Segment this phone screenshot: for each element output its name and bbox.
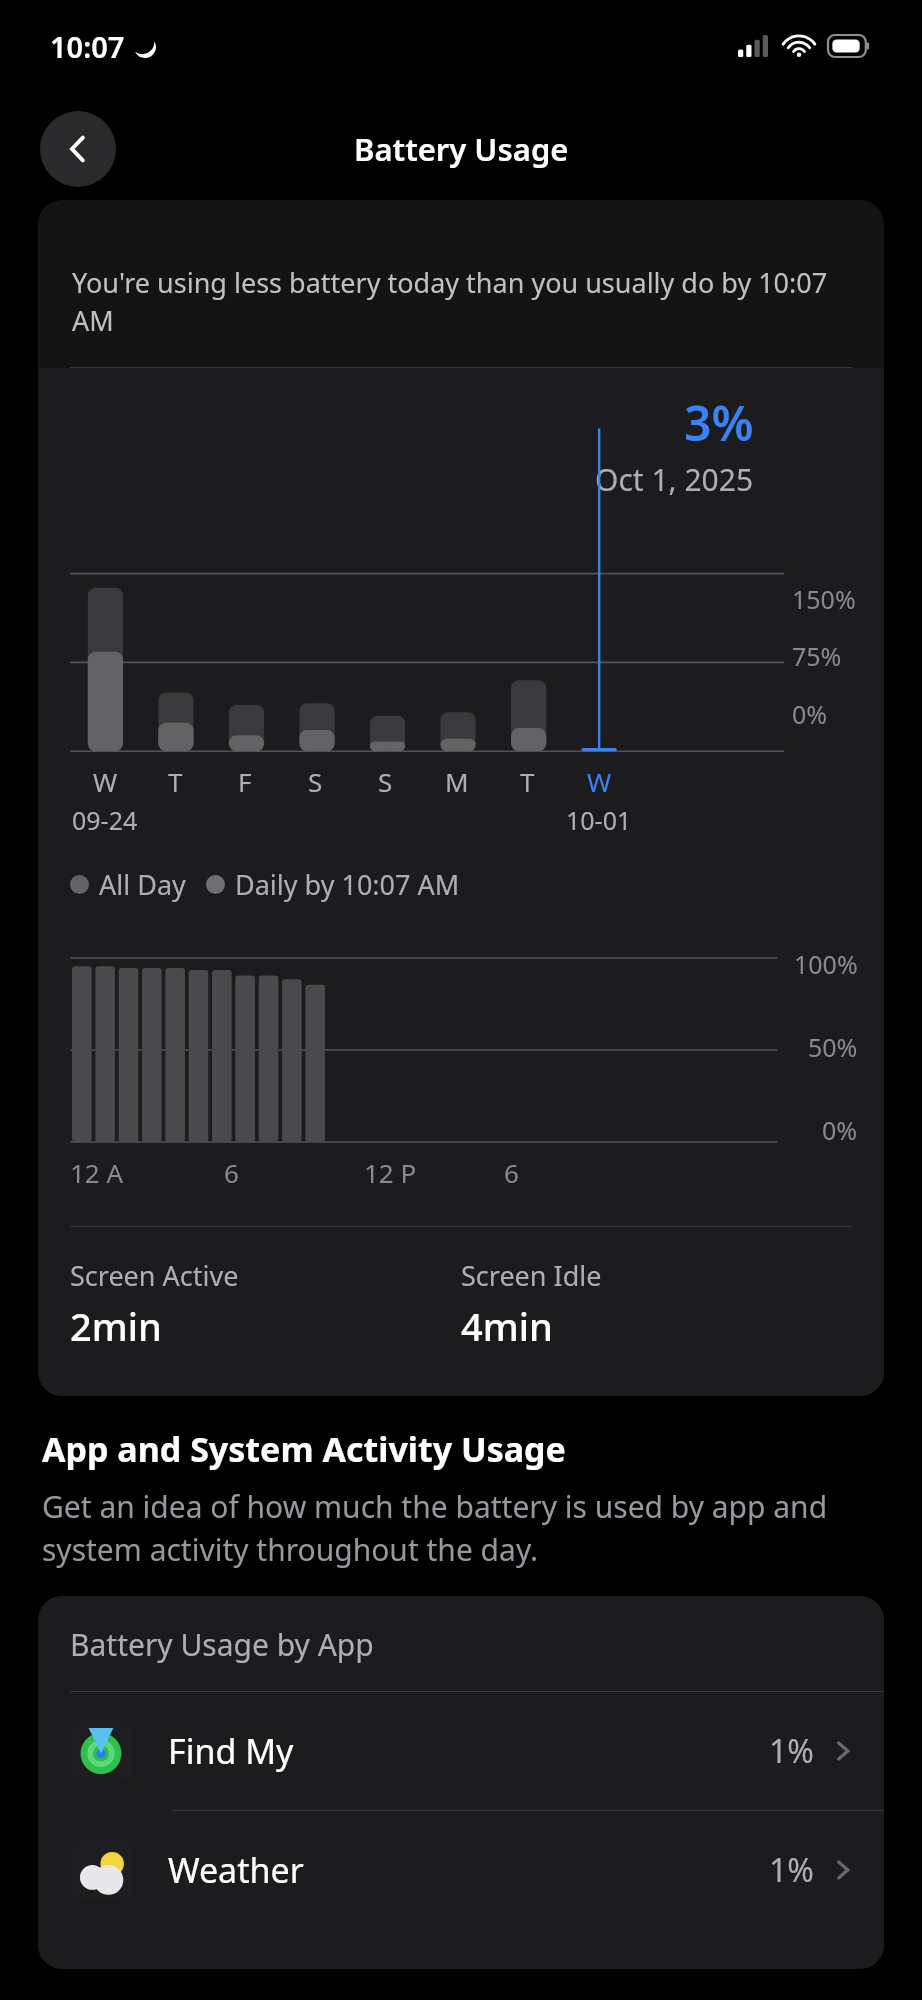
staticText: F [238, 764, 252, 799]
staticText: Daily by 10:07 AM [235, 866, 460, 903]
staticText: 75% [792, 639, 842, 673]
staticText: T [168, 764, 183, 799]
staticText: 6 [224, 1155, 239, 1190]
staticText: Screen Idle [461, 1257, 602, 1294]
staticText: M [445, 764, 469, 799]
staticText: 10-01 [566, 803, 632, 837]
staticText: 12 P [364, 1155, 417, 1190]
other: Open Weather [832, 1859, 854, 1881]
staticText: Weather [168, 1847, 769, 1893]
staticText: 0% [822, 1113, 858, 1147]
staticText: T [520, 764, 535, 799]
staticText: 1% [769, 1848, 814, 1892]
staticText: 09-24 [72, 803, 138, 837]
staticText: App and System Activity Usage [42, 1426, 566, 1472]
staticText: Battery Usage [354, 128, 569, 170]
staticText: 150% [792, 582, 856, 616]
staticText: 0% [792, 697, 828, 731]
staticText: 4min [461, 1300, 553, 1352]
staticText: 1% [769, 1729, 814, 1773]
staticText: 2min [70, 1300, 162, 1352]
staticText: 50% [808, 1030, 858, 1064]
button[interactable]: Find My [38, 1692, 884, 1810]
staticText: 6 [504, 1155, 519, 1190]
staticText: All Day [99, 866, 186, 903]
staticText: Get an idea of how much the battery is u… [42, 1486, 880, 1570]
staticText: Find My [168, 1728, 769, 1774]
staticText: Battery Usage by App [70, 1624, 374, 1665]
button[interactable]: Weather [38, 1811, 884, 1929]
staticText: S [308, 764, 323, 799]
button[interactable]: Back [40, 111, 116, 187]
staticText: 12 A [70, 1155, 124, 1190]
staticText: 100% [794, 947, 858, 981]
staticText: 10:07 [50, 27, 125, 66]
staticText: W [587, 764, 612, 799]
other: Open Find My [832, 1740, 854, 1762]
staticText: Oct 1, 2025 [595, 459, 754, 500]
staticText: You're using less battery today than you… [72, 264, 850, 339]
staticText: S [378, 764, 393, 799]
staticText: Screen Active [70, 1257, 239, 1294]
staticText: 3% [684, 390, 754, 455]
staticText: W [93, 764, 118, 799]
